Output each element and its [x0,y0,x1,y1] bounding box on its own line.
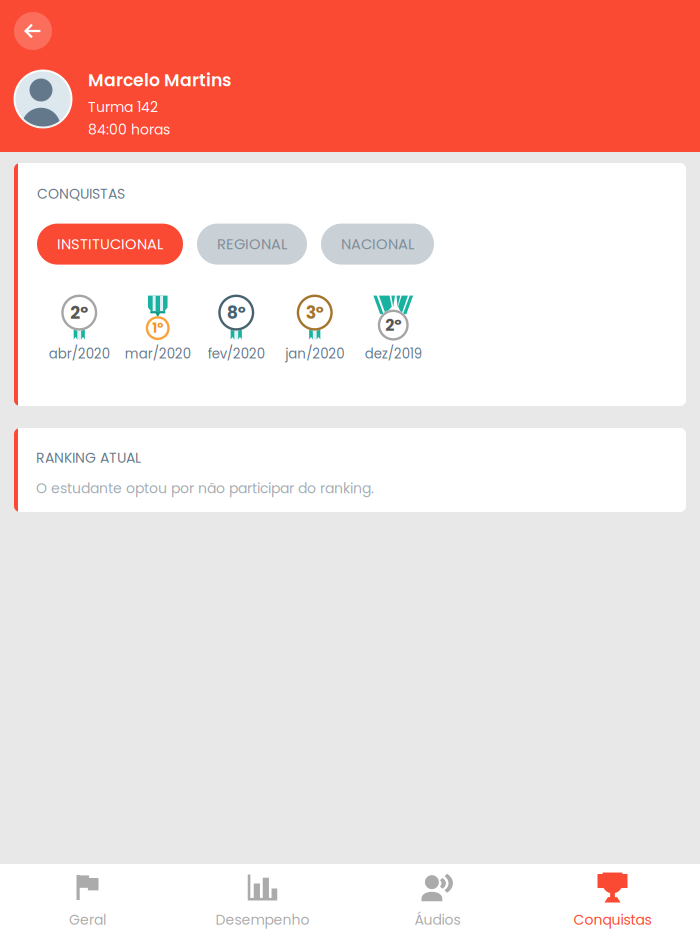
staticText: Geral [69,910,106,930]
button[interactable]: Desempenho [175,864,350,934]
staticText: O estudante optou por não participar do … [36,479,374,498]
staticText: NACIONAL [341,234,414,254]
button[interactable]: Geral [0,864,175,934]
staticText: REGIONAL [217,234,287,254]
staticText: Conquistas [573,910,651,930]
staticText: Áudios [414,910,460,930]
staticText: CONQUISTAS [37,184,125,204]
staticText: INSTITUCIONAL [57,234,163,254]
staticText: abr/2020 [49,345,110,363]
button[interactable]: REGIONAL [197,224,307,265]
staticText: 2º [385,314,401,336]
staticText: Desempenho [215,910,309,930]
button[interactable]: Áudios [350,864,525,934]
button[interactable]: NACIONAL [321,224,434,265]
staticText: dez/2019 [365,345,422,363]
staticText: 8º [227,300,246,325]
staticText: jan/2020 [285,345,344,363]
staticText: 1º [152,319,163,337]
button[interactable]: INSTITUCIONAL [37,224,183,265]
staticText: mar/2020 [125,345,191,363]
staticText: 84:00 horas [88,120,170,139]
staticText: RANKING ATUAL [36,448,141,468]
button[interactable]: Back [14,12,52,50]
staticText: fev/2020 [208,345,265,363]
button[interactable]: Conquistas [525,864,700,934]
staticText: Marcelo Martins [88,68,231,92]
staticText: Turma 142 [88,97,158,117]
staticText: 3º [306,300,324,325]
staticText: 2º [70,300,88,325]
